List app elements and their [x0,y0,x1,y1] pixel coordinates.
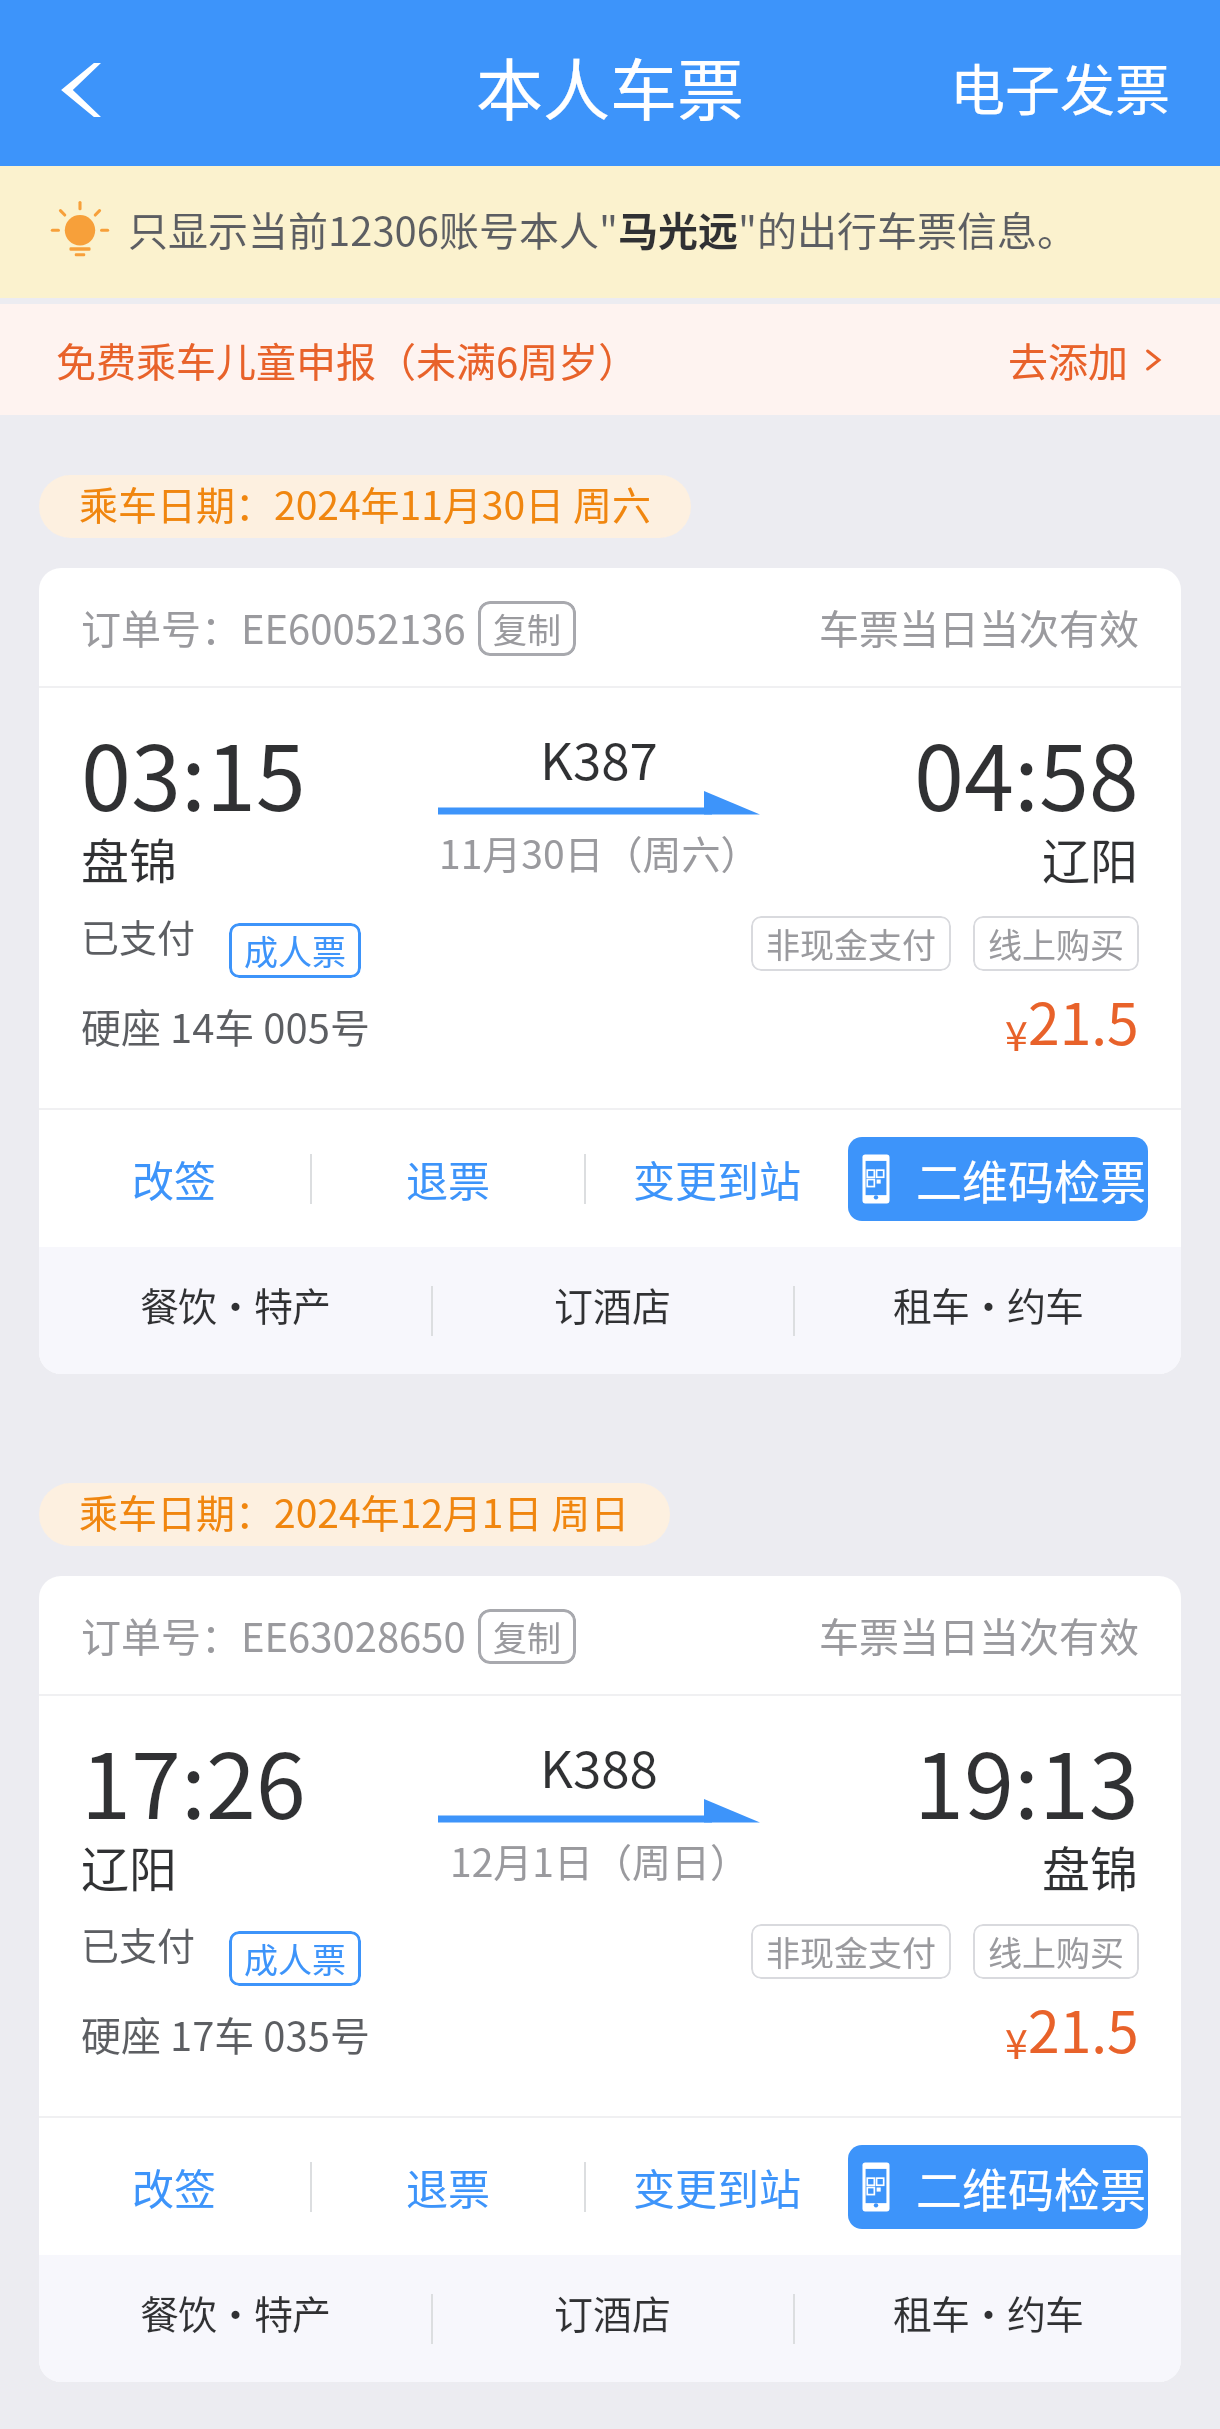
button[interactable]: 改签 [122,2146,227,2227]
staticText: 乘车日期：2024年12月1日 周日 [79,1483,630,1539]
staticText: 线上购买 [988,1927,1124,1976]
button[interactable]: 退票 [396,2146,501,2227]
staticText: 订单号：EE63028650 [81,1606,466,1664]
staticText: ¥ [1005,1003,1028,1062]
staticText: 盘锦 [81,823,178,893]
staticText: 订酒店 [554,1276,672,1332]
staticText: 已支付 [81,908,196,963]
staticText: 复制 [493,1612,561,1661]
staticText: 变更到站 [633,1148,802,1209]
button[interactable]: 订酒店 [544,1266,682,1342]
staticText: 改签 [132,1148,217,1209]
staticText: K387 [540,721,658,795]
button[interactable]: 变更到站 [623,2146,812,2227]
button[interactable]: 租车・约车 [883,2274,1094,2350]
button[interactable]: Back [29,45,119,135]
staticText: 成人票 [244,1934,346,1983]
staticText: 03:15 [81,707,306,837]
button[interactable]: 二维码检票 [848,2145,1148,2229]
button[interactable]: 餐饮·特产 [130,1266,341,1342]
staticText: 免费乘车儿童申报（未满6周岁） [56,331,639,389]
button[interactable]: 租车・约车 [883,1266,1094,1342]
staticText: 退票 [406,2156,491,2217]
staticText: 辽阳 [81,1831,178,1901]
staticText: 21.5 [1028,979,1139,1062]
staticText: 线上购买 [988,919,1124,968]
staticText: 租车・约车 [893,2284,1084,2340]
staticText: 电子发票 [950,46,1171,126]
staticText: 复制 [493,604,561,653]
staticText: 马光远 [618,200,738,258]
staticText: "的出行车票信息。 [738,200,1077,258]
staticText: 订单号：EE60052136 [81,598,466,656]
staticText: K388 [540,1729,658,1803]
staticText: 餐饮·特产 [140,2284,331,2340]
button[interactable]: 复制 [478,1609,576,1664]
staticText: 硬座 17车 035号 [81,2005,370,2063]
staticText: 17:26 [81,1715,306,1845]
staticText: 改签 [132,2156,217,2217]
staticText: 11月30日（周六） [439,824,760,880]
staticText: 退票 [406,1148,491,1209]
staticText: 餐饮·特产 [140,1276,331,1332]
button[interactable]: 免费乘车儿童申报（未满6周岁） [0,304,1220,415]
staticText: 21.5 [1028,1987,1139,2070]
staticText: 04:58 [914,707,1139,837]
staticText: 辽阳 [1042,823,1139,893]
staticText: 订酒店 [554,2284,672,2340]
staticText: 非现金支付 [766,919,936,968]
staticText: 只显示当前12306账号本人" [128,200,618,258]
staticText: 车票当日当次有效 [819,598,1139,656]
button[interactable]: 餐饮·特产 [130,2274,341,2350]
staticText: 租车・约车 [893,1276,1084,1332]
staticText: 本人车票 [476,37,744,134]
staticText: 去添加 [1008,331,1128,389]
staticText: 二维码检票 [916,2154,1146,2221]
staticText: 二维码检票 [916,1146,1146,1213]
button[interactable]: 改签 [122,1138,227,1219]
staticText: 硬座 14车 005号 [81,997,370,1055]
staticText: 乘车日期：2024年11月30日 周六 [79,475,651,531]
staticText: 非现金支付 [766,1927,936,1976]
staticText: 盘锦 [1042,1831,1139,1901]
staticText: 车票当日当次有效 [819,1606,1139,1664]
staticText: 已支付 [81,1916,196,1971]
staticText: 成人票 [244,926,346,975]
staticText: 12月1日（周日） [450,1832,749,1888]
button[interactable]: 变更到站 [623,1138,812,1219]
button[interactable]: 电子发票 [901,24,1220,148]
button[interactable]: 退票 [396,1138,501,1219]
button[interactable]: 订酒店 [544,2274,682,2350]
staticText: 变更到站 [633,2156,802,2217]
button[interactable]: 复制 [478,601,576,656]
staticText: 19:13 [914,1715,1139,1845]
staticText: ¥ [1005,2011,1028,2070]
button[interactable]: 二维码检票 [848,1137,1148,1221]
